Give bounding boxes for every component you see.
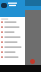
button[interactable] (0, 40, 25, 45)
button[interactable] (0, 55, 25, 60)
button[interactable] (0, 35, 25, 40)
button[interactable] (0, 45, 25, 50)
button[interactable] (0, 25, 25, 30)
button[interactable] (0, 20, 25, 25)
button[interactable] (0, 50, 25, 55)
button[interactable] (0, 30, 25, 35)
